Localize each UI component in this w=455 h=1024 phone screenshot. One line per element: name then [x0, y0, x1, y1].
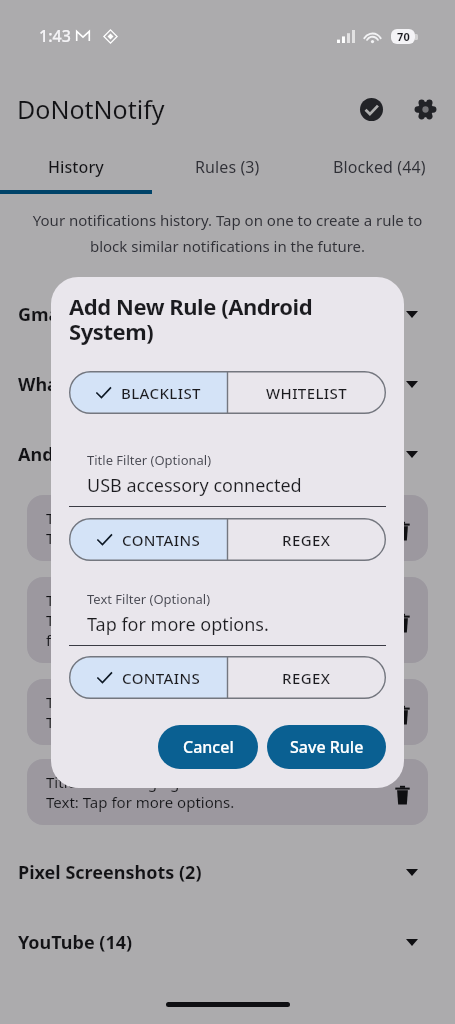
staticText: Title Filter (Optional): [87, 451, 212, 469]
staticText: History: [48, 156, 104, 178]
staticText: REGEX: [282, 668, 331, 688]
staticText: Title: USB charging this device: [46, 590, 258, 610]
staticText: Title: USB charging this device: [46, 772, 258, 792]
button[interactable]: Title: USB charging this device: [27, 759, 428, 825]
staticText: CONTAINS: [122, 668, 201, 688]
button[interactable]: Select all: [349, 87, 393, 131]
button[interactable]: Pixel Screenshots (2): [0, 837, 455, 907]
staticText: Text: Tap for more options for: [46, 610, 255, 630]
button[interactable]: REGEX: [227, 518, 386, 561]
staticText: Title: USB accessory connected: [46, 692, 263, 712]
staticText: Android System (4): [18, 442, 187, 467]
staticText: Text: Tap for more options.: [46, 712, 235, 732]
button[interactable]: Android System (4): [0, 419, 455, 489]
staticText: USB accessory connected: [87, 473, 302, 498]
button[interactable]: REGEX: [227, 656, 386, 699]
staticText: Title: USB charging this device: [46, 508, 258, 528]
staticText: Your notifications history. Tap on one t…: [18, 210, 437, 257]
staticText: Save Rule: [290, 736, 364, 758]
button[interactable]: Save Rule: [267, 725, 386, 769]
staticText: 1:43: [39, 25, 71, 47]
button[interactable]: YouTube (14): [0, 907, 455, 977]
button[interactable]: Title: USB charging this device: [27, 495, 428, 561]
staticText: Text: Tap for more options.: [46, 792, 235, 812]
staticText: Cancel: [183, 736, 234, 758]
button[interactable]: Delete: [387, 516, 417, 546]
staticText: BLACKLIST: [121, 383, 201, 403]
staticText: WHITELIST: [266, 383, 348, 403]
button[interactable]: Blocked (44): [303, 156, 455, 178]
staticText: Rules (3): [195, 156, 260, 178]
staticText: Tap for more options.: [87, 612, 269, 637]
staticText: WhatsApp (2): [18, 372, 138, 397]
button[interactable]: Delete: [387, 700, 417, 730]
staticText: CONTAINS: [122, 530, 201, 550]
button[interactable]: WHITELIST: [227, 371, 386, 414]
button[interactable]: Rules (3): [151, 156, 303, 178]
staticText: Pixel Screenshots (2): [18, 860, 202, 885]
button[interactable]: History: [0, 156, 151, 178]
staticText: Blocked (44): [333, 156, 426, 178]
staticText: REGEX: [282, 530, 331, 550]
button[interactable]: Title: USB accessory connected: [27, 679, 428, 745]
button[interactable]: CONTAINS: [69, 518, 227, 561]
staticText: fast charging.: [46, 630, 143, 650]
staticText: Text: Tap for more options.: [46, 528, 235, 548]
staticText: DoNotNotify: [17, 92, 165, 126]
button[interactable]: Gmail (5): [0, 279, 455, 349]
button[interactable]: Cancel: [158, 725, 258, 769]
staticText: Add New Rule (Android System): [69, 291, 390, 347]
staticText: 70: [397, 29, 410, 44]
button[interactable]: Settings: [403, 87, 447, 131]
staticText: YouTube (14): [18, 930, 133, 955]
staticText: Text Filter (Optional): [87, 590, 211, 608]
button[interactable]: CONTAINS: [69, 656, 227, 699]
button[interactable]: WhatsApp (2): [0, 349, 455, 419]
staticText: Gmail (5): [18, 302, 98, 327]
button[interactable]: Delete: [387, 608, 417, 638]
button[interactable]: Delete: [387, 780, 417, 810]
button[interactable]: Title: USB charging this device: [27, 577, 428, 663]
button[interactable]: BLACKLIST: [69, 371, 227, 414]
